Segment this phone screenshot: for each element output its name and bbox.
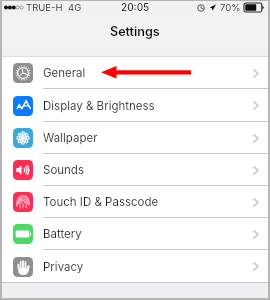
- button[interactable]: Privacy: [2, 250, 268, 283]
- staticText: 20:05: [121, 1, 150, 13]
- staticText: General: [43, 66, 86, 80]
- button[interactable]: Display & Brightness: [2, 89, 268, 122]
- other: Pointer: [0, 0, 270, 300]
- staticText: TRUE-H: [26, 2, 63, 13]
- staticText: Wallpaper: [43, 131, 98, 145]
- staticText: Touch ID & Passcode: [43, 195, 159, 209]
- staticText: 4G: [68, 2, 82, 13]
- button[interactable]: Sounds: [2, 154, 268, 186]
- staticText: Battery: [43, 227, 82, 241]
- staticText: Sounds: [43, 163, 84, 177]
- button[interactable]: Battery: [2, 218, 268, 250]
- button[interactable]: Wallpaper: [2, 122, 268, 154]
- staticText: Settings: [110, 24, 160, 39]
- staticText: Display & Brightness: [43, 99, 155, 113]
- button[interactable]: Touch ID & Passcode: [2, 186, 268, 218]
- staticText: Privacy: [43, 260, 84, 274]
- button[interactable]: General: [2, 57, 268, 89]
- staticText: 70%: [220, 2, 241, 13]
